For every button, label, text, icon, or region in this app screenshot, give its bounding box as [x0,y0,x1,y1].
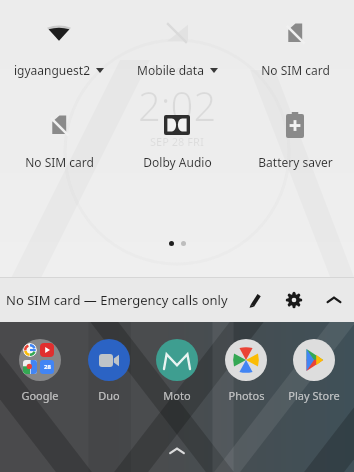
button[interactable]: igyaanguest2 [0,6,118,84]
button[interactable]: Play Store [282,336,346,405]
button[interactable]: Dolby Audio [118,98,236,176]
button[interactable]: Duo [77,336,141,405]
staticText: No SIM card [261,62,330,78]
staticText: SEP 28 FRI [150,134,204,149]
staticText: Battery saver [258,154,333,170]
button[interactable]: No SIM card [0,98,118,176]
button[interactable]: Settings [274,280,314,320]
button[interactable]: Collapse [314,280,354,320]
button[interactable]: No SIM card — Emergency calls only [0,278,234,322]
staticText: Duo [98,388,120,403]
staticText: Moto [163,388,191,403]
staticText: Mobile data [137,62,204,78]
staticText: Dolby Audio [143,154,212,170]
button[interactable]: Edit [234,280,274,320]
button[interactable]: Battery saver [236,98,354,176]
staticText: igyaanguest2 [14,62,90,78]
staticText: Add cities [150,62,205,78]
button[interactable]: Mobile data [118,6,236,84]
button[interactable]: Moto [145,336,209,405]
button[interactable]: Photos [214,336,278,405]
button[interactable]: No SIM card [236,6,354,84]
button[interactable]: Open app drawer [0,434,354,468]
staticText: Google [21,388,59,403]
staticText: No SIM card — Emergency calls only [6,291,228,309]
staticText: Play Store [288,388,340,403]
staticText: 28 [44,363,51,371]
button[interactable]: 28 [8,336,72,405]
staticText: 2:02 [138,78,217,132]
staticText: No SIM card [25,154,94,170]
staticText: Photos [228,388,265,403]
